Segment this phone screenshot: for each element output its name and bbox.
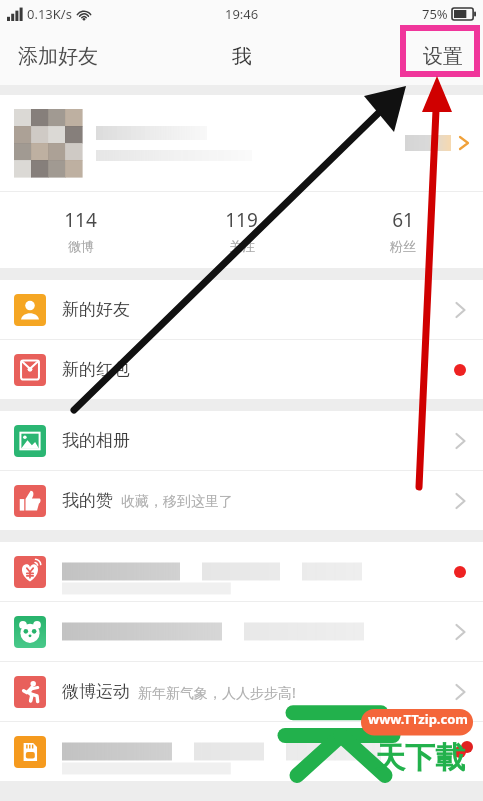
button[interactable]	[0, 95, 483, 191]
staticText: www.TTzip.com	[368, 710, 469, 728]
button[interactable]: 新的好友	[0, 280, 483, 339]
staticText: 新的红包	[62, 359, 130, 380]
button[interactable]	[0, 542, 483, 601]
button[interactable]	[0, 722, 483, 781]
button[interactable]: 新的红包	[0, 340, 483, 399]
staticText: 19:46	[225, 5, 259, 23]
staticText: 新年新气象，人人步步高!	[138, 683, 296, 702]
staticText: 关注	[229, 238, 255, 254]
button[interactable]: 61	[322, 192, 483, 268]
staticText: 0.13K/s	[27, 5, 72, 23]
button[interactable]: 119	[161, 192, 322, 268]
button[interactable]: 添加好友	[14, 38, 102, 75]
staticText: 微博运动	[62, 681, 130, 702]
button[interactable]: 微博运动	[0, 662, 483, 721]
staticText: 粉丝	[390, 238, 416, 254]
staticText: 新的好友	[62, 299, 130, 320]
button[interactable]: 我的赞	[0, 471, 483, 530]
staticText: 61	[392, 207, 414, 233]
staticText: 我的赞	[62, 490, 113, 511]
staticText: 添加好友	[18, 44, 98, 69]
staticText: 75%	[422, 5, 448, 23]
staticText: 119	[225, 207, 258, 233]
button[interactable]: 设置	[419, 38, 467, 75]
staticText: 114	[64, 207, 97, 233]
button[interactable]: 我的相册	[0, 411, 483, 470]
staticText: 天下載	[375, 739, 465, 777]
staticText: 微博	[68, 238, 94, 254]
button[interactable]: 114	[0, 192, 161, 268]
staticText: 收藏，移到这里了	[121, 493, 233, 511]
staticText: 我的相册	[62, 430, 130, 451]
staticText: 我	[232, 44, 252, 69]
button[interactable]	[0, 602, 483, 661]
staticText: 设置	[423, 44, 463, 69]
